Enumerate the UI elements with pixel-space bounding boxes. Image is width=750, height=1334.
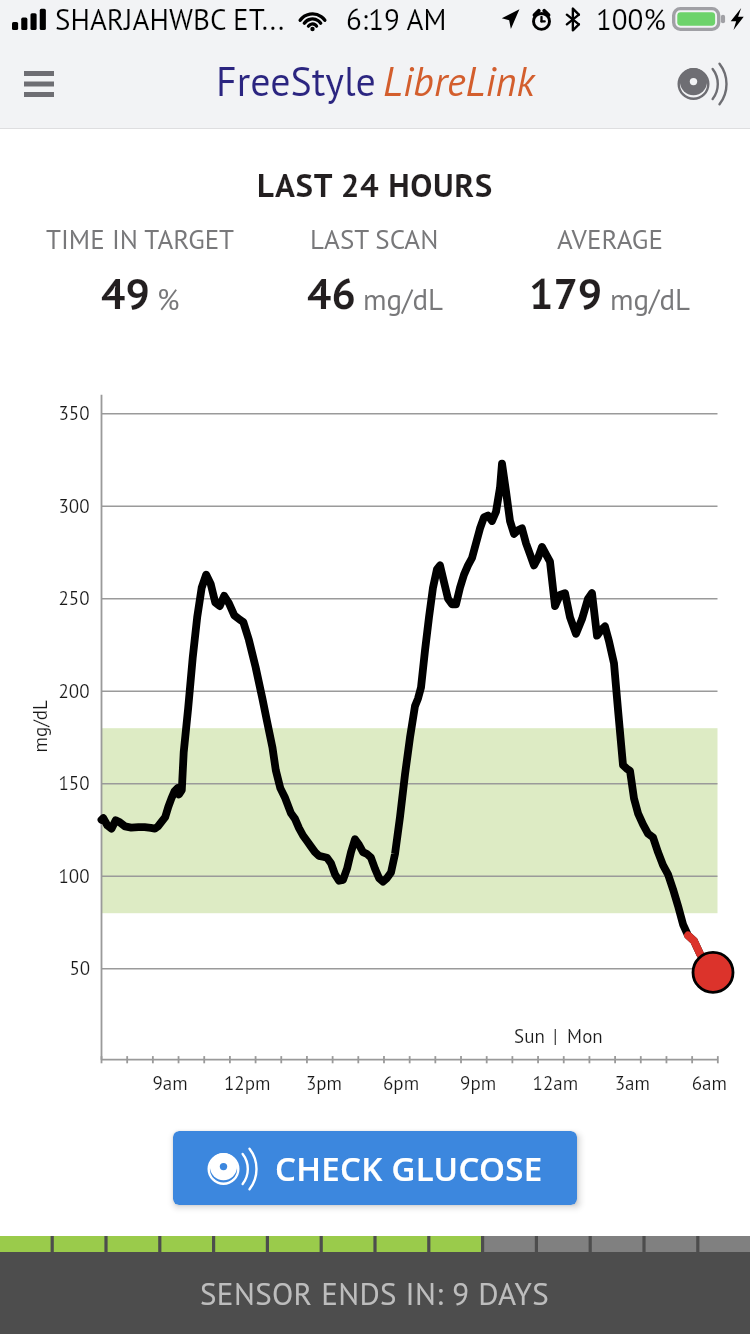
button[interactable]: Scan sensor [654, 40, 750, 128]
staticText: 46 [307, 265, 356, 321]
staticText: LAST 24 HOURS [0, 163, 750, 206]
staticText: LibreLink [383, 55, 535, 107]
staticText: 179 [529, 265, 603, 321]
staticText: SENSOR ENDS IN: 9 DAYS [200, 1273, 550, 1313]
staticText: AVERAGE [557, 222, 663, 257]
staticText: LAST SCAN [310, 222, 439, 257]
staticText: mg/dL [610, 280, 690, 318]
staticText: 49 [101, 265, 150, 321]
staticText: mg/dL [363, 280, 443, 318]
button[interactable]: CHECK GLUCOSE [173, 1131, 577, 1205]
staticText: SHARJAHWBC ET... [55, 0, 285, 38]
staticText: TIME IN TARGET [46, 222, 235, 257]
staticText: FreeStyle [216, 55, 376, 107]
staticText: CHECK GLUCOSE [275, 1146, 543, 1191]
staticText: 100% [596, 0, 666, 38]
staticText: 6:19 AM [346, 0, 447, 38]
staticText: % [157, 280, 180, 318]
button[interactable]: Menu [0, 40, 78, 128]
